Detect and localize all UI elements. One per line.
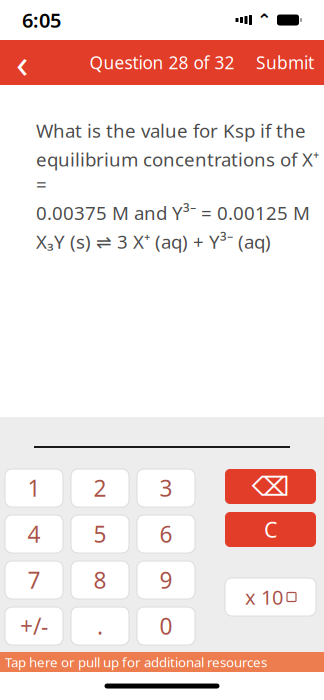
button[interactable]: 4 [5, 515, 63, 553]
staticText: 4 [27, 519, 40, 549]
staticText: What is the value for Ksp if the [36, 118, 306, 143]
staticText: 7 [27, 565, 40, 595]
button[interactable]: 6 [137, 515, 195, 553]
staticText: ⌫ [251, 471, 289, 502]
button[interactable]: 0 [137, 607, 195, 645]
staticText: X₃Y (s) ⇌ 3 X⁺ (aq) + Y³⁻ (aq) [36, 229, 271, 254]
staticText: Tap here or pull up for additional resou… [5, 653, 267, 671]
button[interactable]: Tap here or pull up for additional resou… [0, 652, 324, 672]
button[interactable]: 9 [137, 561, 195, 599]
button[interactable]: C [225, 512, 316, 547]
staticText: 6:05 [22, 7, 61, 33]
staticText: 3 [159, 473, 172, 503]
button[interactable]: +/- [5, 607, 63, 645]
button[interactable]: 2 [71, 469, 129, 507]
staticText: Submit [256, 51, 314, 74]
staticText: . [97, 611, 103, 641]
staticText: 9 [159, 565, 172, 595]
button[interactable]: 7 [5, 561, 63, 599]
button[interactable]: Submit [246, 40, 324, 84]
staticText: C [264, 515, 277, 544]
staticText: +/- [20, 611, 48, 641]
staticText: 0 [159, 611, 172, 641]
staticText: Question 28 of 32 [89, 51, 234, 74]
staticText: 2 [93, 473, 106, 503]
button[interactable]: Back [0, 40, 44, 84]
button[interactable]: 1 [5, 469, 63, 507]
staticText: 1 [27, 473, 40, 503]
staticText: ⌃ [257, 10, 272, 30]
staticText: 8 [93, 565, 106, 595]
button[interactable]: 8 [71, 561, 129, 599]
staticText: 5 [93, 519, 106, 549]
staticText: ‹ [16, 36, 28, 89]
button[interactable]: Backspace [225, 469, 316, 504]
button[interactable]: 3 [137, 469, 195, 507]
button[interactable]: . [71, 607, 129, 645]
staticText: 6 [159, 519, 172, 549]
button[interactable]: 5 [71, 515, 129, 553]
button[interactable]: Times ten to the power [225, 578, 316, 616]
staticText: 0.00375 M and Y³⁻ = 0.00125 M [36, 200, 310, 225]
staticText: x 10 [245, 584, 283, 610]
staticText: equilibrium concentrations of X⁺ = [36, 147, 319, 196]
